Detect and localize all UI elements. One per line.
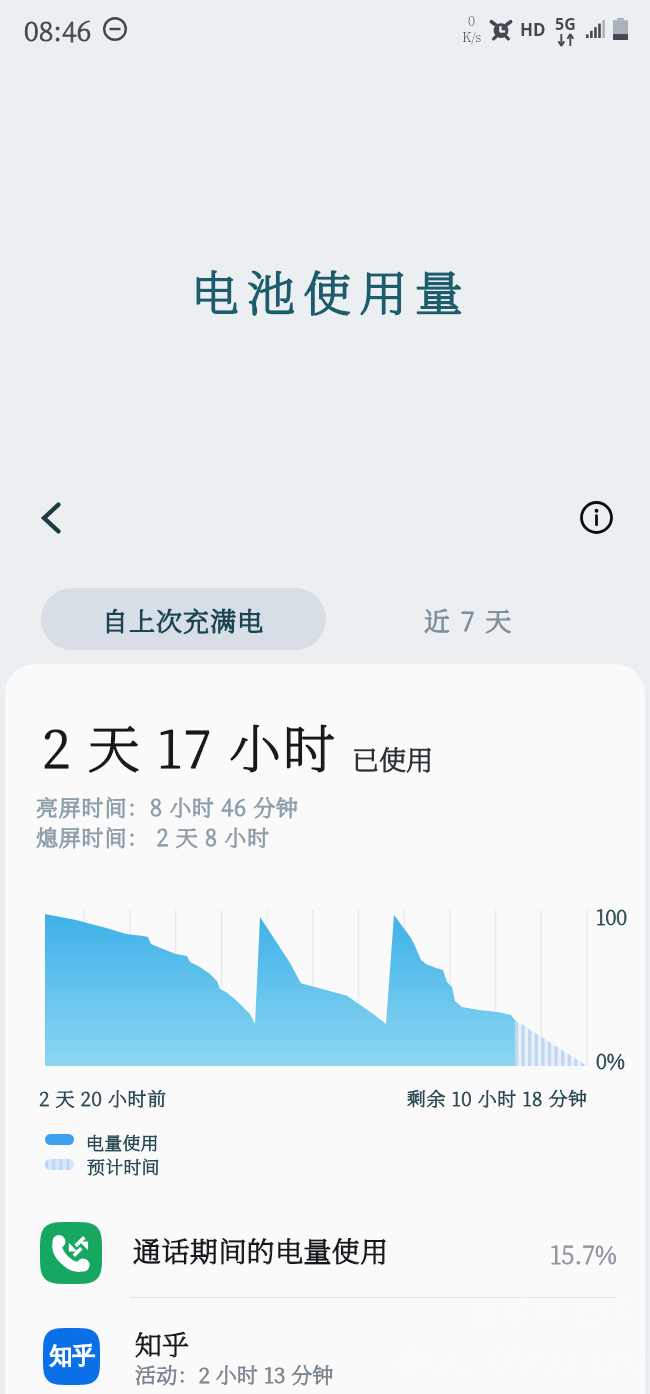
- button[interactable]: 知乎: [5, 1298, 645, 1394]
- staticText: 通话期间的电量使用: [133, 1230, 389, 1270]
- staticText: 剩余 10 小时 18 分钟: [407, 1084, 588, 1111]
- staticText: 活动：2 小时 13 分钟: [135, 1359, 334, 1389]
- staticText: 知乎: [135, 1324, 189, 1363]
- staticText: 0: [468, 11, 476, 30]
- staticText: 100: [596, 902, 628, 931]
- staticText: 亮屏时间：8 小时 46 分钟: [36, 791, 299, 823]
- staticText: 15.7%: [550, 1236, 617, 1270]
- staticText: 08:46: [24, 10, 92, 49]
- staticText: 5G: [555, 13, 576, 35]
- staticText: 预计时间: [87, 1153, 160, 1179]
- staticText: 2 天 17 小时: [42, 708, 338, 783]
- button[interactable]: 近 7 天: [396, 588, 541, 650]
- staticText: HD: [520, 18, 546, 41]
- button[interactable]: 自上次充满电: [41, 588, 326, 650]
- staticText: 活动：2 小时 13 分钟: [135, 1359, 334, 1389]
- button[interactable]: 通话期间的电量使用: [5, 1206, 645, 1297]
- staticText: 100: [596, 902, 628, 931]
- button[interactable]: Back: [26, 492, 78, 544]
- staticText: 亮屏时间：8 小时 46 分钟: [36, 791, 299, 823]
- staticText: 自上次充满电: [102, 601, 265, 638]
- staticText: 剩余 10 小时 18 分钟: [407, 1084, 588, 1111]
- staticText: 熄屏时间： 2 天 8 小时: [36, 821, 270, 853]
- staticText: 知乎: [135, 1324, 189, 1363]
- staticText: 电量使用: [86, 1129, 159, 1155]
- staticText: 已使用: [352, 739, 433, 778]
- staticText: 2 天 17 小时: [42, 708, 338, 783]
- staticText: 电池使用量: [191, 256, 472, 325]
- staticText: 已使用: [352, 739, 433, 778]
- staticText: 盖乐世社区: [467, 1286, 638, 1332]
- staticText: 2 天 20 小时前: [39, 1084, 167, 1111]
- staticText: 通话期间的电量使用: [133, 1230, 389, 1270]
- staticText: 08:46: [24, 10, 92, 49]
- staticText: 预计时间: [87, 1153, 160, 1179]
- staticText: 0%: [596, 1046, 625, 1075]
- staticText: 电池使用量: [191, 256, 472, 325]
- staticText: 熄屏时间： 2 天 8 小时: [36, 821, 270, 853]
- staticText: 近 7 天: [424, 601, 514, 638]
- staticText: 0%: [596, 1046, 625, 1075]
- staticText: 2 天 20 小时前: [39, 1084, 167, 1111]
- staticText: 15.7%: [550, 1236, 617, 1270]
- staticText: 近 7 天: [424, 601, 514, 638]
- staticText: 电量使用: [86, 1129, 159, 1155]
- staticText: 自上次充满电: [102, 601, 265, 638]
- button[interactable]: Information: [570, 491, 622, 543]
- staticText: K/s: [462, 27, 482, 46]
- staticText: 知乎: [49, 1342, 95, 1371]
